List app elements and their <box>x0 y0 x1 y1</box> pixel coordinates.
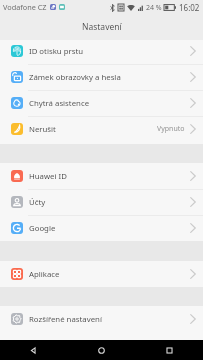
button[interactable]: Recents <box>135 340 203 360</box>
staticText: Google <box>29 223 56 234</box>
button[interactable]: ID otisku prstu <box>0 40 203 64</box>
staticText: Zámek obrazovky a hesla <box>29 72 121 83</box>
button[interactable]: Google <box>0 215 203 241</box>
button[interactable]: Aplikace <box>0 261 203 287</box>
staticText: Vodafone CZ <box>3 2 47 12</box>
button[interactable]: Chytrá asistence <box>0 90 203 116</box>
staticText: Nerušit <box>29 124 56 135</box>
staticText: Účty <box>29 197 46 208</box>
staticText: Nastavení <box>82 21 122 33</box>
staticText: Rozšířené nastavení <box>29 314 102 325</box>
button[interactable]: Účty <box>0 189 203 215</box>
button[interactable]: Home <box>67 340 135 360</box>
button[interactable]: Nerušit <box>0 116 203 144</box>
staticText: 24 % <box>146 3 162 13</box>
button[interactable]: Huawei ID <box>0 163 203 189</box>
staticText: 16:02 <box>179 2 200 13</box>
button[interactable]: Rozšířené nastavení <box>0 306 203 332</box>
button[interactable]: Zámek obrazovky a hesla <box>0 64 203 90</box>
staticText: Huawei ID <box>29 171 67 182</box>
staticText: Vypnuto <box>157 124 185 134</box>
staticText: Chytrá asistence <box>29 98 90 109</box>
staticText: ID otisku prstu <box>29 46 84 57</box>
button[interactable]: Back <box>0 340 67 360</box>
staticText: Aplikace <box>29 269 60 280</box>
